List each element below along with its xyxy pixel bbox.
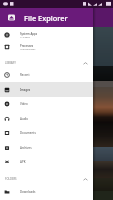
- button[interactable]: Collapse: [82, 176, 89, 183]
- button[interactable]: APK: [0, 154, 93, 169]
- staticText: Downloads: [20, 190, 36, 194]
- button[interactable]: Archives: [0, 140, 93, 155]
- staticText: 156 processes: [20, 48, 36, 51]
- staticText: Audio: [20, 117, 29, 121]
- staticText: Video: [20, 102, 28, 106]
- staticText: Images: [20, 88, 31, 92]
- staticText: Archives: [20, 146, 32, 150]
- button[interactable]: Downloads: [0, 184, 93, 199]
- staticText: System Apps: [20, 32, 38, 36]
- button[interactable]: Audio: [0, 111, 93, 126]
- button[interactable]: App icon: [8, 14, 15, 21]
- staticText: LIBRARY: [5, 61, 16, 65]
- button[interactable]: Video: [0, 96, 93, 111]
- button[interactable]: Images: [0, 82, 93, 97]
- staticText: Recent: [20, 73, 30, 77]
- staticText: Processes: [20, 44, 34, 48]
- staticText: File Explorer: [24, 13, 68, 23]
- button[interactable]: System Apps: [0, 29, 93, 41]
- staticText: Documents: [20, 131, 36, 135]
- button[interactable]: Collapse: [82, 60, 89, 67]
- staticText: FOLDERS: [5, 177, 17, 181]
- button[interactable]: Processes: [0, 41, 93, 53]
- button[interactable]: Documents: [0, 125, 93, 140]
- staticText: APK: [20, 160, 26, 164]
- staticText: 114 apps: [20, 36, 30, 39]
- button[interactable]: Recent: [0, 67, 93, 82]
